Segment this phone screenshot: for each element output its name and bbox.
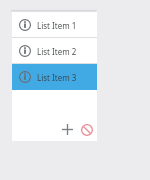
button[interactable]: List Item 1 [12, 12, 97, 38]
button[interactable]: Remove [81, 124, 93, 136]
staticText: List Item 2 [37, 46, 77, 57]
button[interactable]: Add [62, 124, 73, 135]
staticText: List Item 1 [37, 20, 77, 31]
staticText: List Item 3 [37, 72, 77, 83]
button[interactable]: List Item 2 [12, 38, 97, 64]
button[interactable]: List Item 3 [12, 64, 97, 90]
